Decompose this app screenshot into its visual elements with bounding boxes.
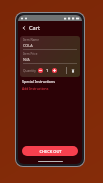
button[interactable]: Back [20, 24, 28, 32]
button[interactable]: CHECK OUT [22, 146, 78, 156]
button[interactable]: Decrease quantity [38, 68, 43, 73]
button[interactable]: Increase quantity [52, 68, 57, 73]
staticText: CHECK OUT [39, 149, 62, 154]
staticText: Item Price [23, 52, 38, 56]
staticText: COLA [23, 43, 33, 48]
staticText: Cart [29, 24, 41, 32]
staticText: 1 [46, 68, 49, 74]
staticText: Special Instructions [22, 79, 55, 84]
staticText: Add Instructions [22, 86, 49, 91]
button[interactable]: Delete item [69, 67, 76, 74]
staticText: Quantity [23, 69, 36, 73]
staticText: N/A [23, 57, 30, 62]
staticText: Item Name [23, 38, 39, 42]
